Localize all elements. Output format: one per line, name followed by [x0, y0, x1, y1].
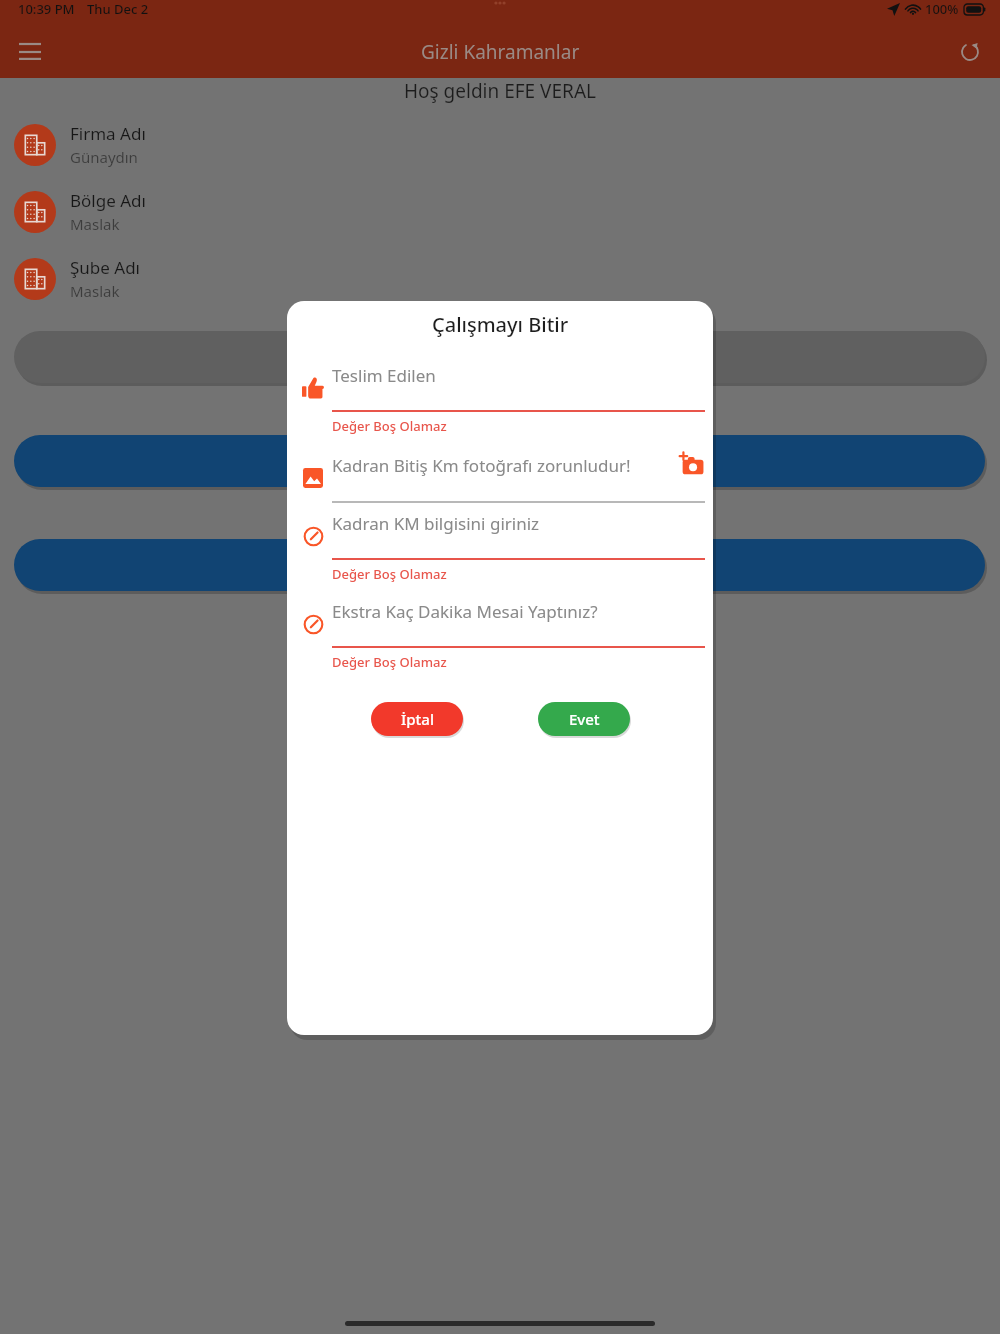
button[interactable]: Take photo	[679, 452, 705, 478]
button[interactable]	[14, 435, 985, 487]
staticText: İptal	[401, 709, 434, 729]
button[interactable]: Ekstra Kaç Dakika Mesai Yaptınız?	[294, 600, 705, 648]
staticText: Teslim Edilen	[332, 364, 436, 387]
staticText: Firma Adı	[70, 122, 146, 145]
button[interactable]: Evet	[538, 702, 630, 736]
staticText: Hoş geldin EFE VERAL	[404, 78, 596, 104]
button[interactable]: Firma Adı	[14, 122, 1000, 167]
staticText: Çalışmayı Bitir	[432, 311, 569, 338]
button[interactable]: Refresh	[948, 30, 992, 74]
button[interactable]: Şube Adı	[14, 256, 1000, 301]
staticText: 10:39 PM	[18, 0, 75, 18]
staticText: Kadran KM bilgisini giriniz	[332, 512, 540, 535]
staticText: Değer Boş Olamaz	[332, 417, 447, 435]
button[interactable]	[14, 539, 985, 591]
staticText: Değer Boş Olamaz	[332, 653, 447, 671]
staticText: Maslak	[70, 281, 120, 301]
staticText: Gizli Kahramanlar	[421, 39, 580, 65]
staticText: Thu Dec 2	[87, 0, 149, 18]
staticText: 100%	[925, 0, 959, 18]
staticText: Şube Adı	[70, 256, 141, 279]
button[interactable]: Kadran KM bilgisini giriniz	[294, 512, 705, 560]
staticText: Günaydın	[70, 147, 138, 167]
staticText: Evet	[569, 709, 600, 729]
staticText: Değer Boş Olamaz	[332, 565, 447, 583]
staticText: Maslak	[70, 214, 120, 234]
staticText: Ekstra Kaç Dakika Mesai Yaptınız?	[332, 600, 598, 623]
button[interactable]: Teslim Edilen	[294, 364, 705, 412]
staticText: Kadran Bitiş Km fotoğrafı zorunludur!	[332, 454, 631, 477]
button[interactable]: Bölge Adı	[14, 189, 1000, 234]
button[interactable]: Menu	[8, 30, 52, 74]
button[interactable]	[14, 331, 985, 383]
button[interactable]: Kadran Bitiş Km fotoğrafı zorunludur!	[294, 452, 705, 503]
staticText: Bölge Adı	[70, 189, 146, 212]
button[interactable]: İptal	[371, 702, 463, 736]
